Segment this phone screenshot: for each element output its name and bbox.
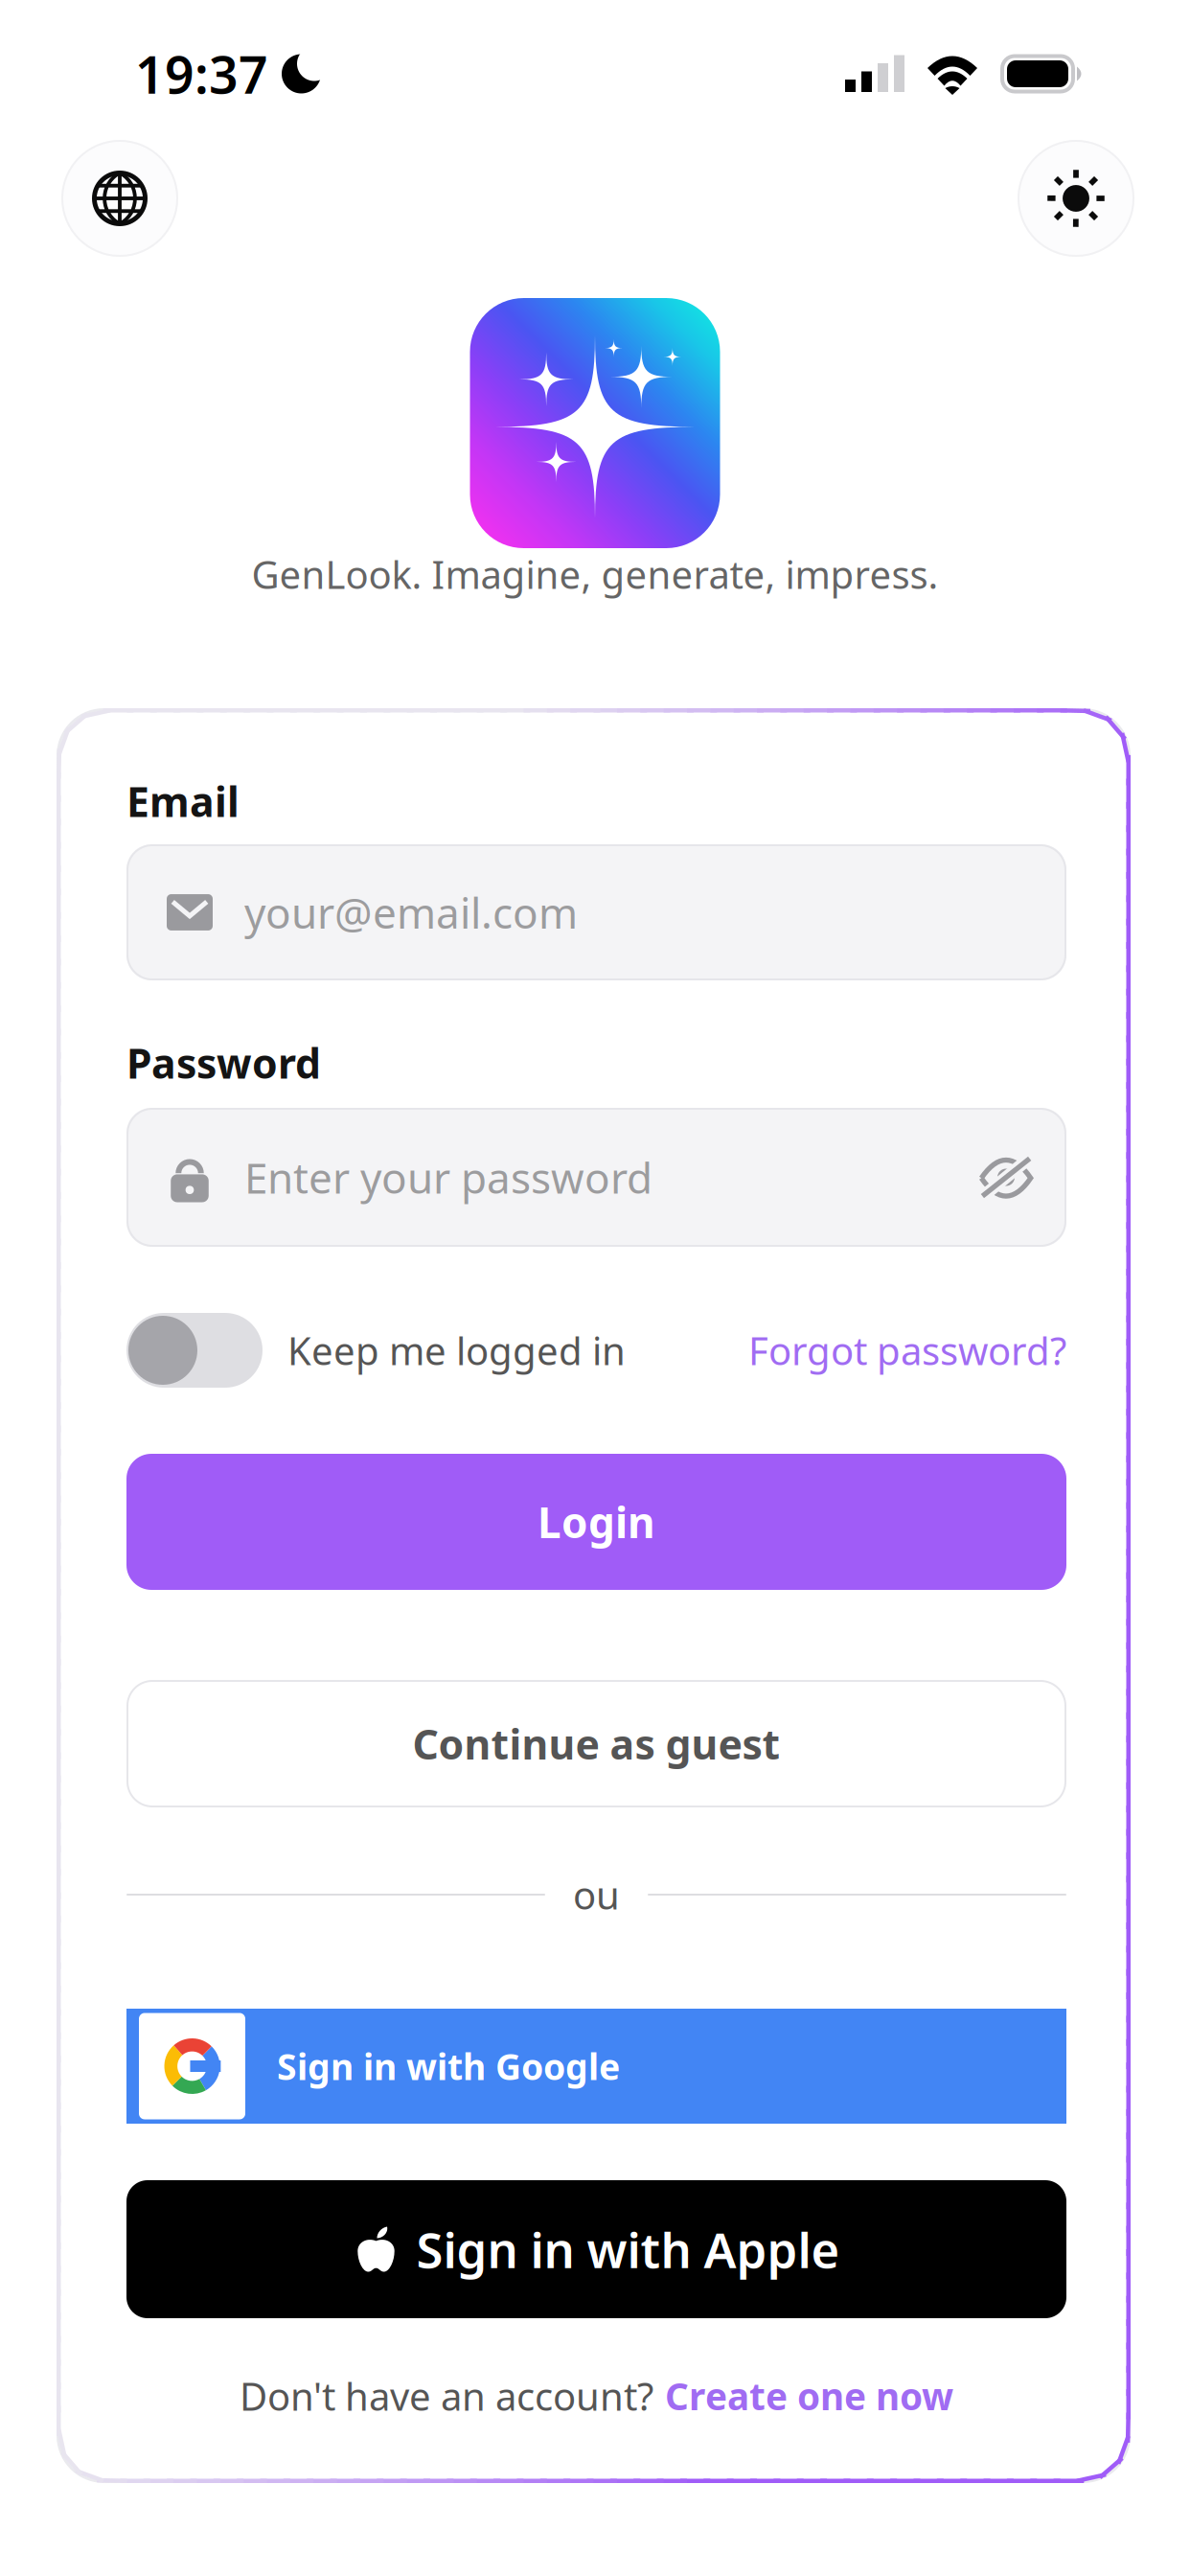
staticText: Sign in with Google xyxy=(277,2042,620,2090)
button[interactable]: Don't have an account? xyxy=(240,2375,953,2417)
staticText: Don't have an account? xyxy=(240,2370,653,2421)
staticText: Email xyxy=(126,774,240,828)
button[interactable]: Login xyxy=(126,1454,1066,1590)
staticText: GenLook. Imagine, generate, impress. xyxy=(252,549,938,599)
button[interactable]: Continue as guest xyxy=(126,1680,1066,1807)
button[interactable]: Toggle appearance xyxy=(1018,140,1134,257)
staticText: Password xyxy=(126,1036,321,1090)
staticText: ou xyxy=(573,1869,620,1920)
staticText: Enter your password xyxy=(244,1149,652,1205)
button[interactable]: Show password xyxy=(978,1150,1034,1205)
staticText: 19:37 xyxy=(135,40,268,108)
button[interactable]: Sign in with Apple xyxy=(126,2180,1066,2318)
button[interactable]: Keep me logged in xyxy=(126,1313,626,1388)
staticText: Login xyxy=(538,1494,655,1550)
staticText: your@email.com xyxy=(244,884,578,940)
button[interactable]: Change language xyxy=(61,140,178,257)
staticText: Keep me logged in xyxy=(287,1325,626,1376)
button[interactable]: Forgot password? xyxy=(748,1313,1066,1388)
staticText: Sign in with Apple xyxy=(416,2217,840,2282)
staticText: Continue as guest xyxy=(412,1717,780,1771)
staticText: Create one now xyxy=(665,2371,953,2420)
button[interactable]: Sign in with Google xyxy=(126,2009,1066,2124)
staticText: Forgot password? xyxy=(748,1325,1066,1376)
